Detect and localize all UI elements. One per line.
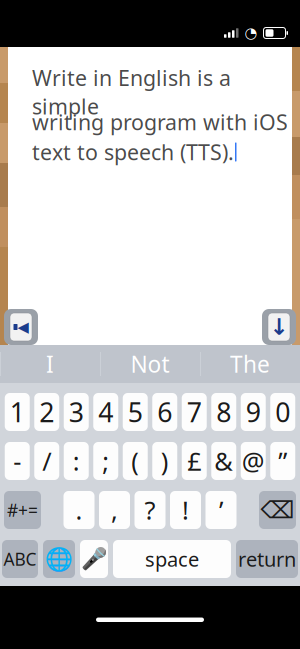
button[interactable]: Delete (259, 491, 296, 529)
button[interactable]: ; (93, 442, 118, 480)
staticText: 3 (69, 394, 84, 430)
button[interactable]: 7 (182, 393, 207, 431)
staticText: ⌫ (260, 496, 294, 524)
staticText: . (75, 493, 82, 527)
button[interactable]: ? (134, 491, 165, 529)
staticText: £ (187, 444, 201, 478)
staticText: ’ (219, 493, 223, 527)
staticText: The (230, 349, 270, 379)
button[interactable]: ” (270, 442, 295, 480)
button[interactable]: 8 (211, 393, 236, 431)
button[interactable]: - (5, 442, 30, 480)
staticText: ? (144, 493, 155, 527)
staticText: #+= (7, 498, 38, 521)
staticText: 2 (39, 394, 54, 430)
button[interactable]: & (211, 442, 236, 480)
button[interactable]: Speak text (4, 309, 38, 345)
button[interactable]: Hide keyboard (262, 309, 296, 345)
button[interactable]: Dictation (80, 540, 108, 578)
staticText: & (214, 444, 233, 478)
button[interactable]: ) (152, 442, 177, 480)
button[interactable]: 1 (5, 393, 30, 431)
staticText: ! (182, 493, 189, 527)
button[interactable]: 3 (64, 393, 89, 431)
staticText: Not (130, 349, 169, 379)
button[interactable]: return (236, 540, 298, 578)
staticText: 4 (98, 394, 113, 430)
button[interactable]: , (99, 491, 130, 529)
staticText: - (13, 444, 21, 478)
staticText: @ (242, 444, 265, 478)
staticText: 6 (157, 394, 172, 430)
button[interactable]: ( (123, 442, 148, 480)
staticText: / (42, 444, 51, 478)
staticText: 7 (187, 394, 202, 430)
button[interactable]: 9 (241, 393, 266, 431)
staticText: ↓ (269, 314, 288, 340)
staticText: , (111, 493, 118, 527)
button[interactable]: 0 (270, 393, 295, 431)
staticText: 9 (246, 394, 261, 430)
button[interactable]: : (64, 442, 89, 480)
button[interactable]: 5 (123, 393, 148, 431)
staticText: ) (161, 444, 169, 478)
button[interactable]: / (34, 442, 59, 480)
staticText: 1 (10, 394, 25, 430)
staticText: text to speech (TTS). (32, 138, 234, 166)
staticText: 🎤 (80, 547, 107, 571)
staticText: 5 (128, 394, 143, 430)
staticText: return (238, 546, 296, 572)
button[interactable]: #+= (4, 491, 41, 529)
button[interactable]: space (113, 540, 231, 578)
staticText: ◀ (17, 319, 28, 335)
staticText: Write in English is a simple (32, 64, 231, 120)
staticText: ” (278, 444, 287, 478)
staticText: 0 (275, 394, 290, 430)
staticText: ◔ (244, 25, 257, 41)
button[interactable]: ’ (205, 491, 236, 529)
staticText: ABC (3, 547, 36, 570)
staticText: ( (131, 444, 139, 478)
button[interactable]: 2 (34, 393, 59, 431)
button[interactable]: The (200, 345, 300, 383)
staticText: ; (102, 444, 109, 478)
staticText: writing program with iOS (32, 108, 288, 136)
staticText: 🌐 (45, 546, 73, 572)
button[interactable]: ABC (2, 540, 38, 578)
staticText: : (73, 444, 80, 478)
button[interactable]: Not (100, 345, 200, 383)
button[interactable]: I (0, 345, 100, 383)
button[interactable]: £ (182, 442, 207, 480)
button[interactable]: 4 (93, 393, 118, 431)
button[interactable]: 6 (152, 393, 177, 431)
button[interactable]: ! (170, 491, 201, 529)
button[interactable]: Next keyboard (43, 540, 75, 578)
staticText: space (145, 546, 199, 572)
staticText: 8 (216, 394, 231, 430)
button[interactable]: @ (241, 442, 266, 480)
button[interactable]: . (63, 491, 94, 529)
staticText: I (46, 349, 54, 379)
